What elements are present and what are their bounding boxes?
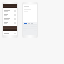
button[interactable]: Key <box>25 28 26 30</box>
button[interactable]: Key <box>35 24 36 26</box>
button[interactable]: Key <box>24 28 25 30</box>
button[interactable]: Key <box>32 26 33 28</box>
button[interactable] <box>3 9 17 13</box>
button[interactable] <box>3 13 17 17</box>
button[interactable]: Key <box>36 24 37 26</box>
button[interactable]: Header image <box>3 4 17 8</box>
button[interactable]: Key <box>31 24 32 26</box>
button[interactable] <box>3 21 17 25</box>
button[interactable] <box>3 17 17 21</box>
button[interactable]: Key <box>31 26 32 28</box>
button[interactable] <box>3 32 17 35</box>
button[interactable]: Key <box>33 26 34 28</box>
button[interactable]: Key <box>36 26 37 28</box>
button[interactable]: Key <box>34 26 35 28</box>
button[interactable]: Key <box>26 28 27 30</box>
button[interactable]: Key <box>34 24 35 26</box>
button[interactable]: Key <box>33 24 34 26</box>
button[interactable]: Photo strip <box>3 26 17 31</box>
button[interactable]: Key <box>32 24 33 26</box>
button[interactable]: Key <box>23 28 24 30</box>
button[interactable]: Key <box>35 26 36 28</box>
